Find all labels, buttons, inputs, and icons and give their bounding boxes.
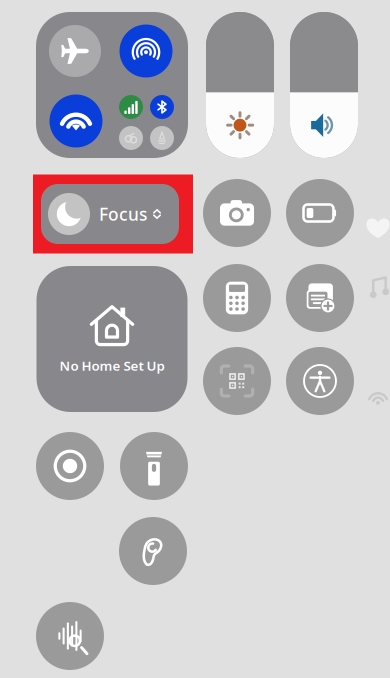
button[interactable]: Wi-Fi [49,94,102,147]
button[interactable]: Volume [290,12,358,158]
staticText: No Home Set Up [59,357,164,374]
button[interactable]: No Home Set Up [36,266,187,412]
button[interactable]: Cellular Data [119,95,143,119]
button[interactable]: Bluetooth [150,95,174,119]
staticText: Focus [99,202,147,225]
button[interactable]: Flashlight [120,432,188,500]
button[interactable]: Music Recognition [36,602,104,670]
button[interactable]: Calculator [203,264,271,332]
button[interactable]: AirDrop [119,24,172,77]
button[interactable]: Satellite [150,126,174,150]
button[interactable]: Quick Note [286,264,354,332]
button[interactable]: Brightness [206,12,274,158]
button[interactable]: Camera [203,179,271,247]
button[interactable]: Hearing [119,517,187,585]
button[interactable]: Airplane Mode [49,25,101,77]
button[interactable]: Accessibility Shortcuts [286,347,354,415]
button[interactable]: Low Power Mode [286,179,354,247]
button[interactable]: Focus [44,184,182,244]
button[interactable]: Code Scanner [203,347,271,415]
button[interactable]: Personal Hotspot [119,126,143,150]
button[interactable]: Screen Recording [36,432,104,500]
